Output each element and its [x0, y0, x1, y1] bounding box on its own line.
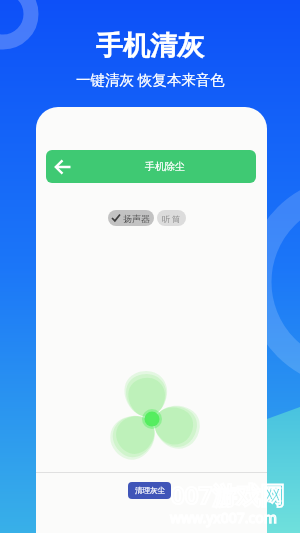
staticText: 扬声器 — [123, 213, 150, 224]
staticText: 007游戏网 — [171, 478, 285, 511]
staticText: 一键清灰 恢复本来音色 — [76, 69, 225, 89]
staticText: 清理灰尘 — [135, 486, 165, 495]
staticText: 手机清灰 — [96, 29, 204, 63]
staticText: 手机除尘 — [145, 160, 185, 173]
button[interactable]: 清理灰尘 — [128, 482, 171, 499]
staticText: 听 筒 — [162, 213, 181, 224]
button[interactable]: 听 筒 — [157, 210, 186, 226]
staticText: www.yx007.com — [170, 508, 277, 527]
button[interactable]: 扬声器 — [108, 210, 154, 226]
button[interactable]: Back — [46, 150, 256, 183]
button[interactable]: Back — [50, 154, 76, 180]
